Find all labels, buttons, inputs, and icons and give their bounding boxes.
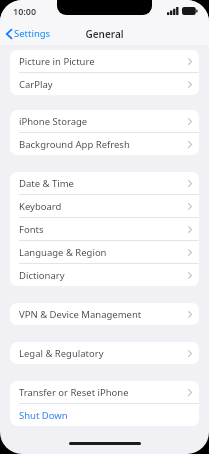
staticText: Settings — [14, 27, 51, 40]
staticText: iPhone Storage — [19, 115, 188, 128]
staticText: Fonts — [19, 223, 188, 236]
staticText: Transfer or Reset iPhone — [19, 386, 188, 399]
staticText: VPN & Device Management — [19, 308, 188, 321]
staticText: General — [85, 27, 124, 41]
staticText: Legal & Regulatory — [19, 347, 188, 360]
button[interactable]: Dictionary — [10, 264, 199, 286]
button[interactable]: Settings — [0, 24, 57, 43]
button[interactable]: Legal & Regulatory — [10, 342, 199, 364]
staticText: Dictionary — [19, 269, 188, 282]
button[interactable]: Transfer or Reset iPhone — [10, 381, 199, 403]
button[interactable]: VPN & Device Management — [10, 303, 199, 325]
button[interactable]: Keyboard — [10, 195, 199, 217]
button[interactable]: Fonts — [10, 218, 199, 240]
staticText: 10:00 — [13, 5, 37, 17]
button[interactable]: Date & Time — [10, 172, 199, 194]
button[interactable]: Shut Down — [10, 404, 199, 426]
staticText: CarPlay — [19, 78, 188, 91]
staticText: Shut Down — [19, 409, 192, 422]
button[interactable]: Language & Region — [10, 241, 199, 263]
staticText: Language & Region — [19, 246, 188, 259]
staticText: Picture in Picture — [19, 55, 188, 68]
staticText: Keyboard — [19, 200, 188, 213]
staticText: Date & Time — [19, 177, 188, 190]
button[interactable]: CarPlay — [10, 73, 199, 95]
button[interactable]: Background App Refresh — [10, 133, 199, 155]
staticText: Background App Refresh — [19, 138, 188, 151]
button[interactable]: Picture in Picture — [10, 50, 199, 72]
button[interactable]: iPhone Storage — [10, 110, 199, 132]
